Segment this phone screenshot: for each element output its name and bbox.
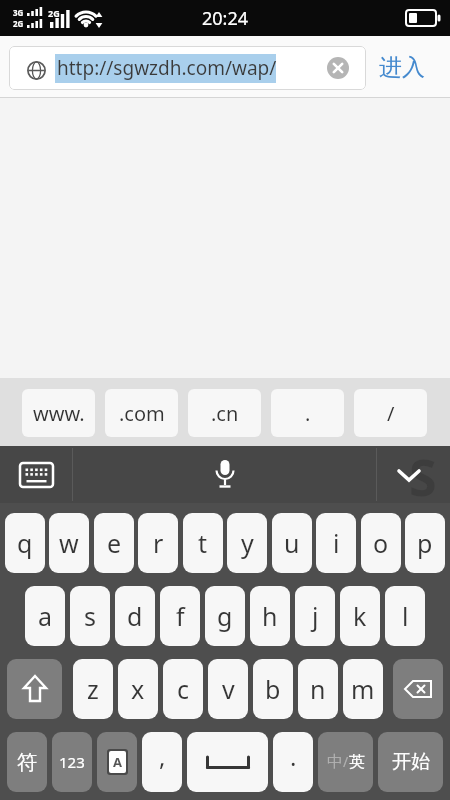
button[interactable]: n <box>298 659 338 719</box>
button[interactable]: .com <box>105 389 178 437</box>
staticText: e <box>107 526 122 560</box>
button[interactable]: v <box>208 659 248 719</box>
button[interactable]: s <box>70 586 110 646</box>
button[interactable]: 中 <box>318 732 373 792</box>
button[interactable] <box>7 659 62 719</box>
button[interactable]: k <box>340 586 380 646</box>
staticText: q <box>17 526 33 560</box>
button[interactable]: l <box>385 586 425 646</box>
button[interactable]: j <box>295 586 335 646</box>
staticText: h <box>262 599 278 633</box>
button[interactable]: A <box>97 732 137 792</box>
button[interactable]: www. <box>22 389 95 437</box>
staticText: t <box>198 526 208 560</box>
staticText: 123 <box>59 752 85 772</box>
staticText: d <box>127 599 143 633</box>
staticText: www. <box>33 400 85 427</box>
button[interactable]: t <box>183 513 223 573</box>
staticText: o <box>373 526 389 560</box>
button[interactable]: o <box>361 513 401 573</box>
button[interactable]: f <box>160 586 200 646</box>
button[interactable]: .cn <box>188 389 261 437</box>
staticText: x <box>131 672 145 706</box>
staticText: c <box>177 672 190 706</box>
staticText: 符 <box>17 750 37 775</box>
staticText: 开始 <box>392 750 430 774</box>
button[interactable]: . <box>271 389 344 437</box>
button[interactable]: h <box>250 586 290 646</box>
staticText: , <box>159 740 166 773</box>
staticText: w <box>59 526 79 560</box>
button[interactable] <box>187 732 268 792</box>
button[interactable]: 开始 <box>378 732 443 792</box>
staticText: S <box>409 443 437 500</box>
button[interactable]: w <box>49 513 89 573</box>
button[interactable]: x <box>118 659 158 719</box>
staticText: .cn <box>211 400 239 427</box>
button[interactable]: y <box>227 513 267 573</box>
staticText: A <box>113 753 122 771</box>
staticText: g <box>217 599 233 633</box>
button[interactable]: u <box>272 513 312 573</box>
button[interactable]: c <box>163 659 203 719</box>
staticText: z <box>87 672 99 706</box>
button[interactable] <box>0 446 72 503</box>
staticText: r <box>153 526 164 560</box>
staticText: u <box>284 526 300 560</box>
staticText: v <box>222 672 235 706</box>
button[interactable]: 123 <box>52 732 92 792</box>
staticText: 3G <box>13 7 24 18</box>
button[interactable]: 进入 <box>379 53 425 82</box>
button[interactable]: http://sgwzdh.com/wap/ <box>9 46 366 90</box>
staticText: y <box>241 526 254 560</box>
staticText: . <box>305 400 311 427</box>
staticText: k <box>353 599 367 633</box>
staticText: p <box>417 526 433 560</box>
button[interactable]: / <box>354 389 427 437</box>
button[interactable] <box>175 446 275 503</box>
staticText: 2G <box>13 18 24 29</box>
button[interactable]: m <box>343 659 383 719</box>
staticText: 20:24 <box>202 6 249 31</box>
staticText: b <box>265 672 281 706</box>
staticText: 英 <box>349 752 365 772</box>
button[interactable]: p <box>405 513 445 573</box>
staticText: .com <box>119 400 165 427</box>
button[interactable]: d <box>115 586 155 646</box>
staticText: l <box>402 599 409 633</box>
staticText: i <box>333 526 340 560</box>
button[interactable]: q <box>5 513 45 573</box>
button[interactable]: b <box>253 659 293 719</box>
button[interactable]: r <box>138 513 178 573</box>
button[interactable]: . <box>273 732 313 792</box>
button[interactable] <box>393 659 443 719</box>
staticText: f <box>176 599 185 633</box>
button[interactable]: e <box>94 513 134 573</box>
button[interactable]: 符 <box>7 732 47 792</box>
staticText: 中 <box>327 752 343 772</box>
button[interactable]: a <box>25 586 65 646</box>
staticText: 进入 <box>379 53 425 82</box>
staticText: 2G <box>48 7 60 19</box>
staticText: j <box>312 599 319 633</box>
staticText: / <box>343 752 349 771</box>
staticText: m <box>351 672 375 706</box>
staticText: s <box>84 599 96 633</box>
staticText: a <box>38 599 53 633</box>
button[interactable] <box>327 57 349 79</box>
button[interactable]: g <box>205 586 245 646</box>
staticText: / <box>387 400 395 427</box>
button[interactable]: S <box>376 446 450 503</box>
staticText: . <box>290 740 297 773</box>
button[interactable]: , <box>142 732 182 792</box>
button[interactable]: i <box>316 513 356 573</box>
staticText: http://sgwzdh.com/wap/ <box>57 55 277 81</box>
staticText: n <box>310 672 326 706</box>
button[interactable]: z <box>73 659 113 719</box>
